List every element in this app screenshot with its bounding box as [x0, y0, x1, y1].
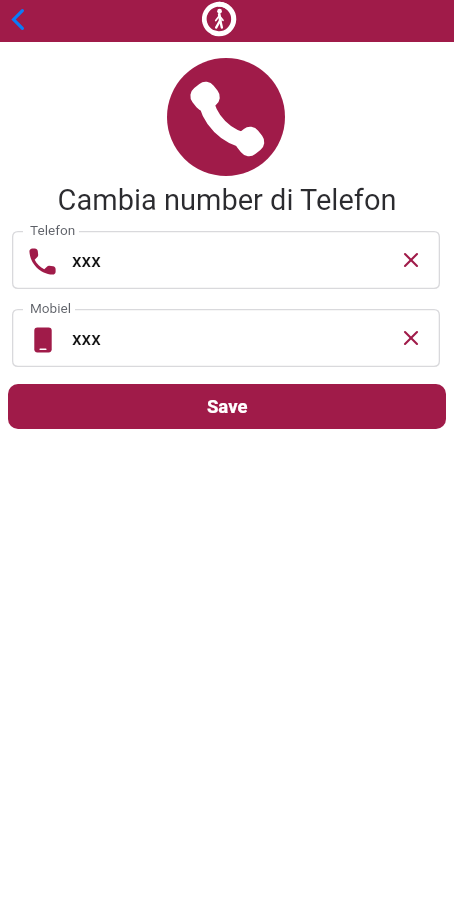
staticText: Save: [207, 396, 248, 418]
staticText: Mobiel: [30, 300, 72, 316]
staticText: xxx: [72, 249, 101, 271]
staticText: Cambia number di Telefon: [0, 183, 454, 217]
button[interactable]: Save: [8, 384, 446, 429]
button[interactable]: Clear: [396, 323, 426, 353]
staticText: Telefon: [30, 222, 76, 238]
staticText: xxx: [72, 327, 101, 349]
button[interactable]: Clear: [396, 245, 426, 275]
button[interactable]: Back: [1, 0, 35, 38]
